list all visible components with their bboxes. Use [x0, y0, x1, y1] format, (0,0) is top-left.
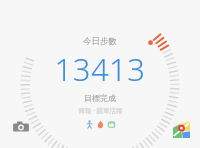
staticText: 目標完成: [84, 93, 116, 103]
button[interactable]: Camera: [10, 116, 32, 138]
staticText: 今日步數: [83, 36, 117, 47]
button[interactable]: Activity summary: [82, 119, 119, 130]
button[interactable]: Maps: [170, 118, 192, 140]
staticText: 13413: [54, 48, 146, 90]
staticText: 簡報 · 踏單活躍: [78, 106, 123, 115]
